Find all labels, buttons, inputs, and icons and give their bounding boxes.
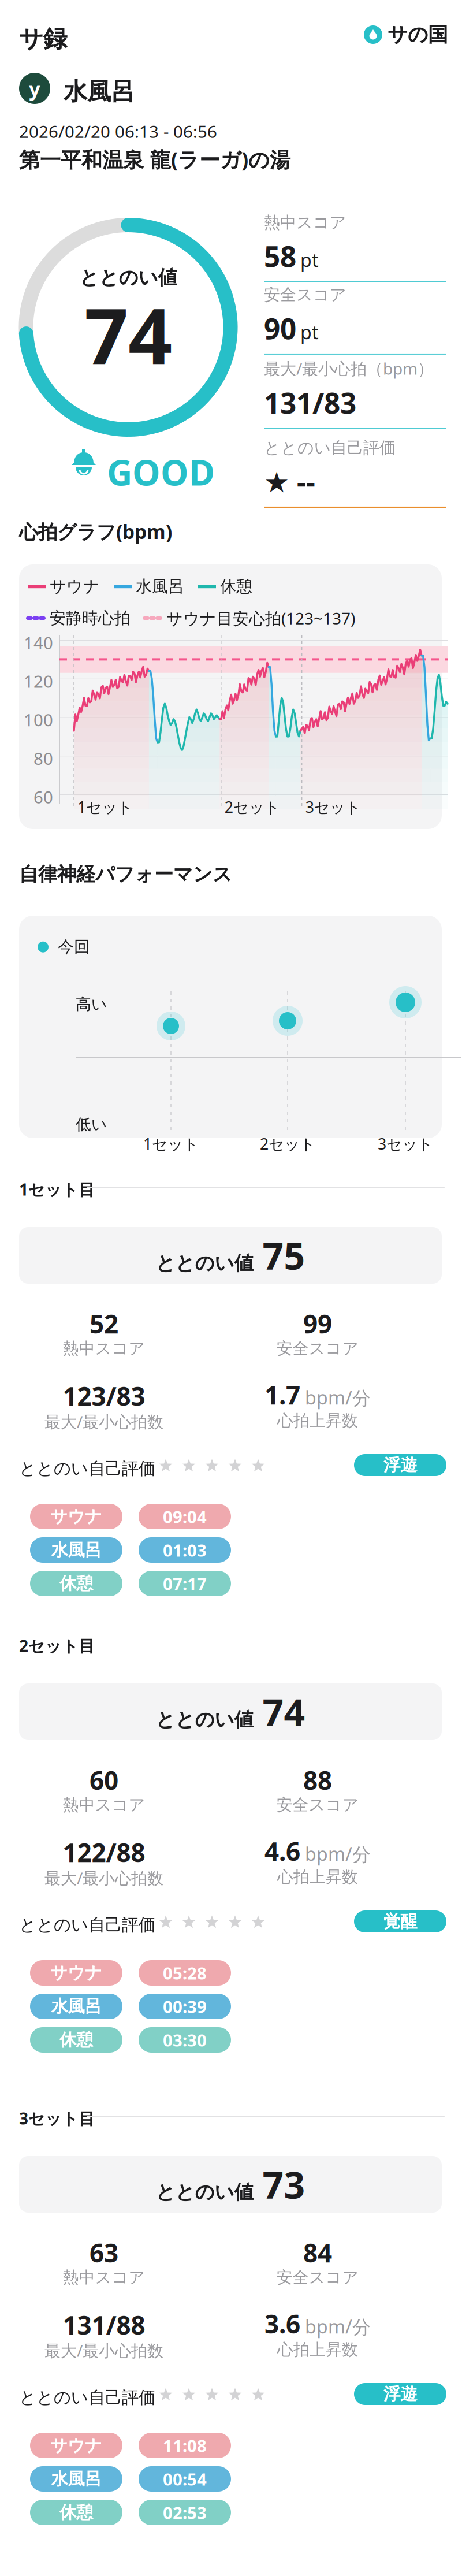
- staticText: 1セット: [77, 797, 133, 817]
- staticText: 80: [33, 747, 53, 770]
- staticText: 休憩: [220, 577, 252, 596]
- staticText: サウナ: [50, 1962, 102, 1983]
- staticText: 60: [90, 1763, 118, 1797]
- staticText: 最大/最小心拍（bpm）: [264, 358, 434, 379]
- staticText: 90: [264, 309, 296, 347]
- staticText: 07:17: [163, 1572, 207, 1595]
- staticText: 52: [90, 1307, 118, 1341]
- staticText: 安全スコア: [276, 1795, 359, 1815]
- staticText: 73: [262, 2160, 305, 2209]
- button[interactable]: 浮遊: [354, 2383, 446, 2405]
- staticText: 02:53: [163, 2501, 207, 2524]
- button[interactable]: 浮遊: [354, 1454, 446, 1476]
- staticText: bpm/分: [305, 1385, 371, 1410]
- staticText: サ録: [19, 24, 67, 54]
- staticText: 覚醒: [383, 1911, 417, 1932]
- staticText: 131/83: [264, 384, 356, 422]
- staticText: 01:03: [163, 1539, 207, 1561]
- staticText: 浮遊: [383, 2384, 417, 2404]
- staticText: ととのい自己評価: [19, 1458, 155, 1479]
- staticText: 熱中スコア: [264, 213, 346, 232]
- staticText: 安全スコア: [276, 1339, 359, 1358]
- staticText: 58: [264, 237, 296, 275]
- staticText: 100: [24, 709, 53, 731]
- staticText: サウナ: [50, 2435, 102, 2456]
- staticText: サウナ: [50, 577, 100, 596]
- staticText: y: [29, 75, 40, 102]
- staticText: 75: [262, 1231, 305, 1280]
- staticText: 4.6: [264, 1834, 300, 1868]
- staticText: 安全スコア: [264, 285, 346, 305]
- staticText: 第一平和温泉 龍(ラーガ)の湯: [19, 146, 290, 173]
- staticText: 最大/最小心拍数: [44, 1411, 163, 1432]
- staticText: 1.7: [264, 1378, 300, 1412]
- staticText: pt: [300, 320, 319, 344]
- staticText: 高い: [76, 995, 107, 1014]
- staticText: 131/88: [63, 2308, 145, 2342]
- staticText: 休憩: [59, 2029, 93, 2050]
- staticText: 00:54: [163, 2468, 207, 2490]
- staticText: 低い: [76, 1115, 107, 1134]
- staticText: ととのい自己評価: [19, 2387, 155, 2408]
- staticText: 99: [303, 1307, 332, 1341]
- staticText: 心拍上昇数: [277, 1867, 358, 1887]
- staticText: 安全スコア: [276, 2268, 359, 2287]
- staticText: GOOD: [107, 448, 215, 495]
- staticText: 最大/最小心拍数: [44, 1867, 163, 1889]
- staticText: ★ --: [264, 462, 315, 500]
- staticText: bpm/分: [305, 1842, 371, 1866]
- staticText: 84: [303, 2236, 332, 2269]
- staticText: 3セット: [305, 797, 361, 817]
- staticText: 2026/02/20 06:13 - 06:56: [19, 120, 217, 143]
- staticText: 123/83: [63, 1379, 145, 1413]
- staticText: 00:39: [163, 1995, 207, 2018]
- staticText: 水風呂: [51, 2469, 101, 2489]
- staticText: 140: [24, 631, 53, 654]
- staticText: 1セット目: [19, 1179, 95, 1200]
- staticText: 3セット目: [19, 2107, 95, 2129]
- staticText: 水風呂: [51, 1996, 101, 2017]
- staticText: 60: [33, 786, 53, 808]
- staticText: サの国: [388, 22, 448, 47]
- staticText: 05:28: [163, 1962, 207, 1984]
- staticText: 11:08: [163, 2434, 207, 2457]
- staticText: サウナ目安心拍(123~137): [166, 607, 355, 629]
- staticText: 安静時心拍: [50, 608, 131, 628]
- staticText: 2セット: [225, 797, 280, 817]
- button[interactable]: サの国: [364, 23, 448, 46]
- staticText: 水風呂: [64, 77, 135, 106]
- staticText: 熱中スコア: [63, 2268, 145, 2287]
- staticText: 74: [262, 1687, 305, 1736]
- staticText: 74: [84, 283, 172, 385]
- staticText: 63: [90, 2236, 118, 2269]
- staticText: 122/88: [63, 1835, 145, 1869]
- staticText: サウナ: [50, 1506, 102, 1527]
- staticText: 03:30: [163, 2029, 207, 2051]
- staticText: 心拍グラフ(bpm): [19, 519, 172, 544]
- staticText: 1セット: [143, 1133, 199, 1154]
- staticText: 3セット: [378, 1133, 433, 1154]
- staticText: 浮遊: [383, 1455, 417, 1475]
- staticText: 2セット目: [19, 1635, 95, 1656]
- staticText: 心拍上昇数: [277, 1411, 358, 1431]
- staticText: 休憩: [59, 1573, 93, 1594]
- staticText: 3.6: [264, 2307, 300, 2341]
- staticText: 水風呂: [136, 577, 184, 596]
- staticText: 休憩: [59, 2502, 93, 2523]
- staticText: 88: [303, 1763, 332, 1797]
- button[interactable]: 覚醒: [354, 1910, 446, 1932]
- staticText: pt: [300, 248, 319, 272]
- staticText: ととのい自己評価: [19, 1915, 155, 1935]
- staticText: ととのい値: [156, 1708, 253, 1732]
- staticText: 熱中スコア: [63, 1339, 145, 1358]
- staticText: ととのい値: [156, 2180, 253, 2204]
- staticText: 120: [24, 670, 53, 693]
- staticText: ととのい値: [156, 1251, 253, 1275]
- staticText: ととのい自己評価: [264, 438, 396, 458]
- staticText: 09:04: [163, 1505, 207, 1528]
- staticText: 自律神経パフォーマンス: [19, 863, 232, 886]
- staticText: 最大/最小心拍数: [44, 2340, 163, 2361]
- staticText: ととのい値: [79, 266, 177, 289]
- staticText: 2セット: [260, 1133, 315, 1154]
- staticText: 心拍上昇数: [277, 2340, 358, 2360]
